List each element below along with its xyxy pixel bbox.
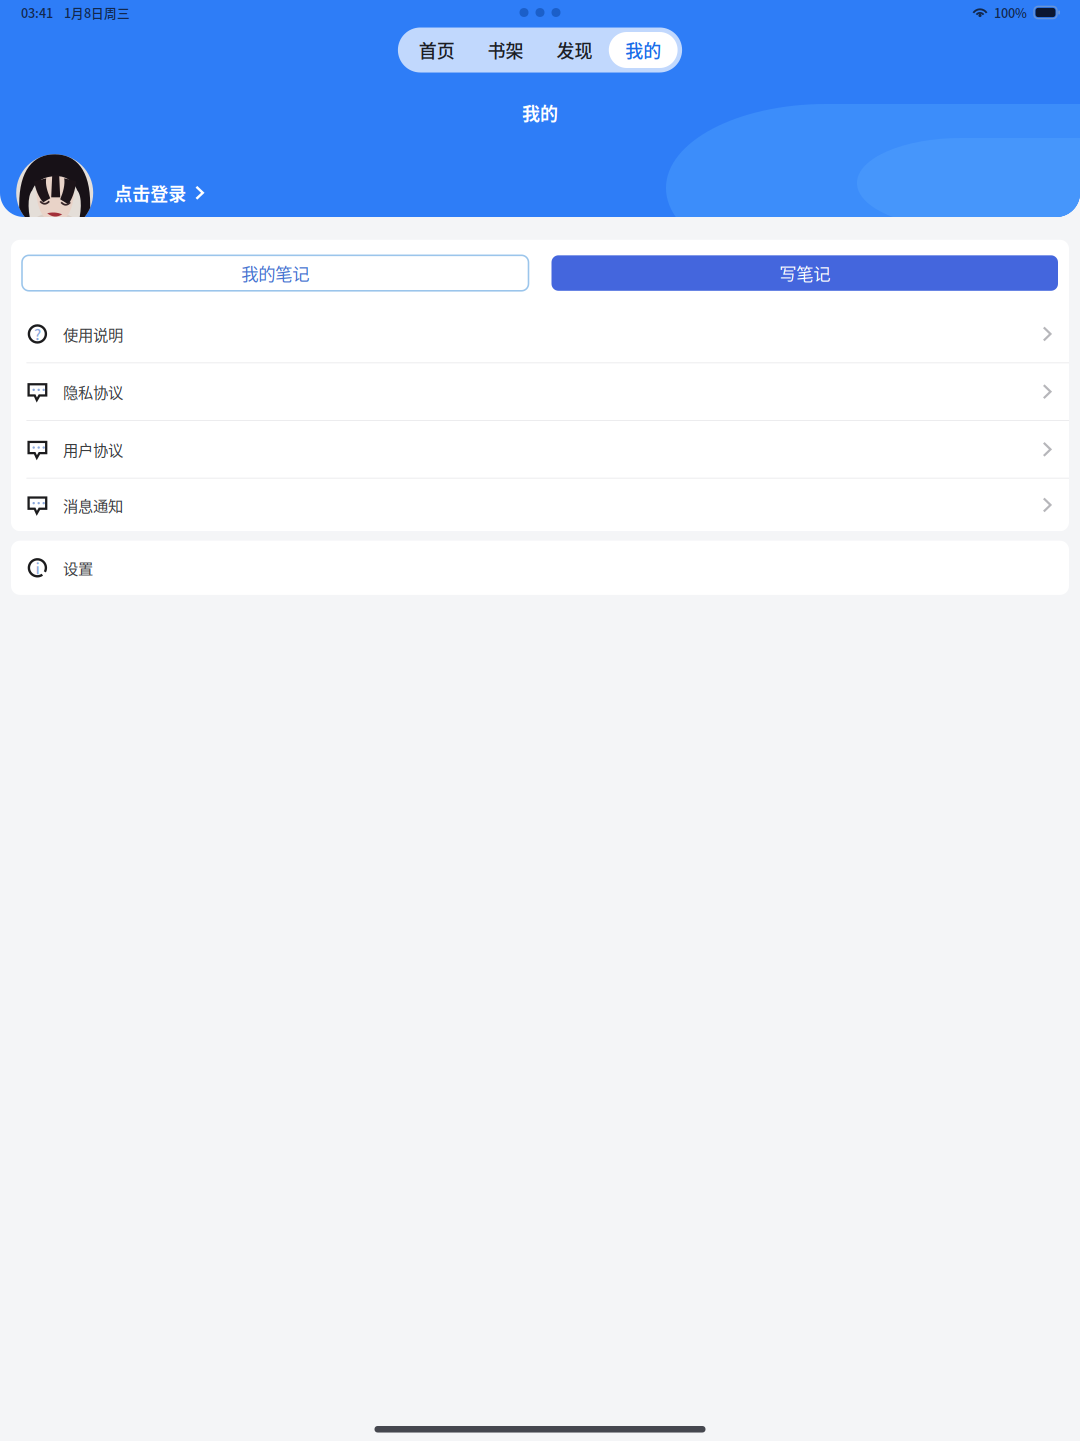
button[interactable]: 首页 [402,32,471,68]
staticText: i [35,557,39,578]
button[interactable]: 消息通知 [11,479,1069,531]
staticText: 我的 [522,99,558,126]
button[interactable]: 用户协议 [11,421,1069,478]
staticText: 点击登录 [114,180,186,206]
staticText: 用户协议 [63,438,123,460]
staticText: 写笔记 [779,260,830,286]
staticText: 100% [994,3,1027,22]
button[interactable]: 我的 [609,32,678,68]
staticText: 首页 [419,37,455,63]
button[interactable]: 点击登录 [93,170,204,216]
staticText: 03:41 [21,3,53,22]
staticText: 我的 [625,37,661,63]
button[interactable]: ? [11,306,1069,362]
staticText: 发现 [556,37,592,63]
staticText: 隐私协议 [63,380,123,403]
button[interactable]: 我的笔记 [22,255,528,291]
staticText: 消息通知 [63,494,123,516]
button[interactable]: i [11,541,1069,595]
staticText: 使用说明 [63,323,123,345]
button[interactable]: 写笔记 [551,255,1058,291]
staticText: 设置 [63,557,93,579]
staticText: ? [34,323,41,344]
staticText: 书架 [488,37,524,63]
button[interactable]: 发现 [540,32,609,68]
staticText: 1月8日周三 [64,3,130,22]
staticText: 我的笔记 [241,260,309,286]
button[interactable]: 隐私协议 [11,363,1069,420]
button[interactable]: 书架 [471,32,540,68]
